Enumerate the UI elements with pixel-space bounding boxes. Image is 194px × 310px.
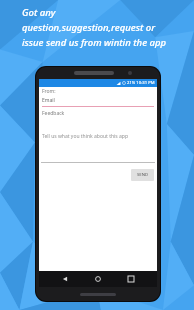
- staticText: Feedback: [42, 110, 65, 117]
- button[interactable]: Tell us what you think about this app: [39, 133, 157, 140]
- staticText: question,suggestion,request or: [22, 21, 156, 34]
- button[interactable]: Email: [39, 95, 157, 107]
- button[interactable]: Home: [91, 272, 105, 286]
- staticText: SEND: [137, 172, 148, 178]
- button[interactable]: Recent apps: [124, 272, 138, 286]
- staticText: Got any: [22, 6, 56, 19]
- staticText: From:: [42, 88, 56, 95]
- staticText: issue send us from wintin the app: [22, 36, 167, 49]
- staticText: Email: [42, 97, 55, 104]
- button[interactable]: SEND: [131, 169, 154, 181]
- button[interactable]: Back: [58, 272, 72, 286]
- staticText: 21% 10:31 PM: [127, 80, 155, 86]
- staticText: Tell us what you think about this app: [42, 133, 128, 140]
